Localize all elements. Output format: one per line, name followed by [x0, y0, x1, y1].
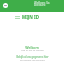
button[interactable]: MIJN ID	[15, 14, 39, 20]
staticText: en beheer uw account	[20, 58, 45, 61]
button[interactable]: Profile	[3, 3, 8, 8]
staticText: Welkom Sa	[34, 1, 50, 5]
staticText: Account	[34, 3, 46, 7]
staticText: Welkom	[25, 45, 39, 50]
staticText: MIJN ID	[22, 14, 39, 20]
staticText: Bekijk al uw gegevens hier	[16, 55, 49, 59]
button[interactable]: Welkom Sa	[34, 0, 50, 4]
staticText: Log in om te starten	[21, 48, 44, 51]
